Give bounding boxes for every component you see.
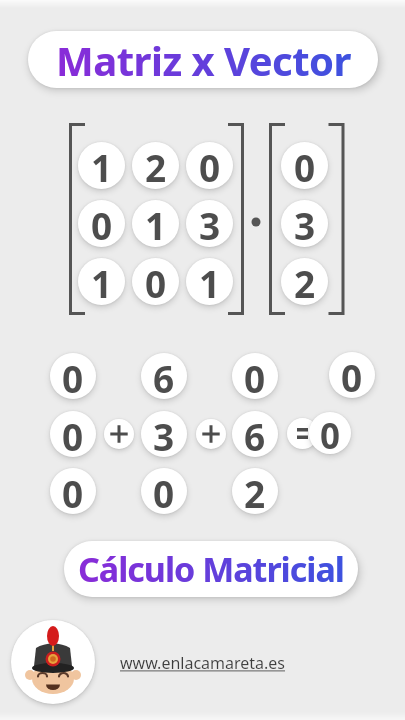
button[interactable]: 1 [78, 258, 125, 305]
staticText: 0 [320, 412, 341, 454]
button[interactable]: 0 [50, 468, 96, 514]
staticText: 3 [294, 200, 316, 247]
staticText: 0 [294, 142, 316, 189]
staticText: www.enlacamareta.es [120, 652, 286, 674]
staticText: 2 [244, 468, 266, 514]
staticText: 1 [91, 142, 113, 189]
staticText: 0 [199, 142, 221, 189]
staticText: 2 [294, 258, 316, 305]
staticText: 6 [244, 411, 266, 457]
button[interactable]: Cálculo Matricial [64, 541, 358, 597]
staticText: 1 [91, 258, 113, 305]
staticText: 0 [244, 353, 266, 399]
staticText: 1 [199, 258, 221, 305]
button[interactable]: 6 [141, 353, 187, 399]
button[interactable]: 0 [232, 353, 278, 399]
staticText: Cálculo Matricial [78, 546, 344, 592]
button[interactable]: 2 [132, 142, 179, 189]
button[interactable] [104, 419, 134, 449]
button[interactable] [11, 620, 95, 704]
staticText: 0 [91, 200, 113, 247]
button[interactable]: 0 [141, 468, 187, 514]
button[interactable]: 0 [329, 352, 375, 398]
staticText: 6 [153, 353, 175, 399]
button[interactable]: 3 [281, 200, 328, 247]
staticText: 2 [145, 142, 167, 189]
button[interactable]: www.enlacamareta.es [110, 648, 295, 678]
button[interactable]: Matriz x Vector [28, 31, 378, 88]
staticText: Matriz x Vector [56, 33, 351, 87]
button[interactable] [287, 418, 318, 449]
staticText: 0 [341, 352, 363, 398]
button[interactable]: 6 [232, 411, 278, 457]
button[interactable]: 1 [78, 142, 125, 189]
staticText: 0 [62, 353, 84, 399]
staticText: 1 [145, 200, 167, 247]
button[interactable]: 1 [132, 200, 179, 247]
staticText: 0 [145, 258, 167, 305]
button[interactable]: 0 [186, 142, 233, 189]
button[interactable]: 3 [186, 200, 233, 247]
button[interactable]: 2 [232, 468, 278, 514]
staticText: 0 [62, 411, 84, 457]
button[interactable]: 0 [78, 200, 125, 247]
button[interactable]: 1 [186, 258, 233, 305]
button[interactable]: 3 [141, 411, 187, 457]
button[interactable]: 0 [132, 258, 179, 305]
staticText: 0 [62, 468, 84, 514]
staticText: 3 [199, 200, 221, 247]
button[interactable]: 0 [50, 353, 96, 399]
staticText: 0 [153, 468, 175, 514]
button[interactable]: 0 [309, 412, 351, 454]
staticText: 3 [153, 411, 175, 457]
button[interactable]: 0 [50, 411, 96, 457]
button[interactable] [196, 419, 226, 449]
button[interactable]: 2 [281, 258, 328, 305]
button[interactable]: 0 [281, 142, 328, 189]
